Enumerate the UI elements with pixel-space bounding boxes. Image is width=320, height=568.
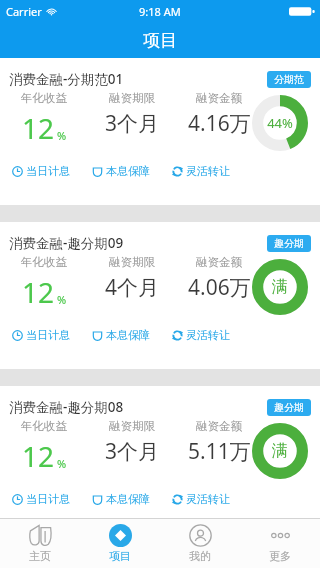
button[interactable]: 消费金融-趣分期09 [0, 222, 320, 369]
staticText: 9:18 AM [139, 4, 181, 19]
staticText: 趣分期 [274, 237, 304, 250]
staticText: % [57, 292, 67, 307]
staticText: 项目 [143, 30, 177, 51]
staticText: 消费金融-趣分期08 [9, 398, 124, 416]
staticText: 当日计息 [26, 164, 70, 178]
button[interactable]: 消费金融-趣分期08 [0, 386, 320, 518]
staticText: 消费金融-趣分期09 [9, 234, 124, 252]
staticText: 3个月 [105, 109, 160, 138]
staticText: 分期范 [274, 73, 304, 86]
staticText: 年化收益 [21, 91, 67, 105]
staticText: 灵活转让 [186, 492, 230, 506]
staticText: 主页 [29, 549, 51, 563]
other: 项目 [109, 524, 132, 547]
staticText: 融资金额 [196, 419, 242, 433]
other: 更多 [269, 524, 292, 547]
staticText: 年化收益 [21, 255, 67, 269]
staticText: 灵活转让 [186, 164, 230, 178]
staticText: 满 [272, 277, 288, 297]
staticText: 4.16万 [188, 109, 251, 138]
button[interactable]: 消费金融-分期范01 [0, 58, 320, 205]
button[interactable]: 主页 [0, 519, 80, 568]
staticText: 当日计息 [26, 328, 70, 342]
staticText: 本息保障 [106, 164, 150, 178]
staticText: 12 [22, 273, 55, 311]
staticText: 满 [272, 441, 288, 461]
button[interactable]: 更多 [240, 519, 320, 568]
staticText: 灵活转让 [186, 328, 230, 342]
staticText: 消费金融-分期范01 [9, 70, 124, 88]
button[interactable]: 项目 [80, 519, 160, 568]
staticText: 融资期限 [109, 419, 155, 433]
staticText: 5.11万 [188, 437, 251, 466]
staticText: 融资金额 [196, 255, 242, 269]
staticText: 趣分期 [274, 401, 304, 414]
staticText: 4个月 [105, 273, 160, 302]
staticText: 融资期限 [109, 91, 155, 105]
other: 我的 [189, 524, 212, 547]
staticText: % [57, 456, 67, 471]
staticText: 4.06万 [188, 273, 251, 302]
staticText: 融资金额 [196, 91, 242, 105]
staticText: 12 [22, 437, 55, 475]
staticText: 年化收益 [21, 419, 67, 433]
staticText: 当日计息 [26, 492, 70, 506]
staticText: 项目 [109, 549, 131, 563]
staticText: Carrier [6, 4, 42, 19]
staticText: 更多 [269, 549, 291, 563]
staticText: 44% [267, 114, 293, 132]
staticText: 融资期限 [109, 255, 155, 269]
staticText: % [57, 128, 67, 143]
staticText: 3个月 [105, 437, 160, 466]
other: 主页 [29, 524, 52, 547]
staticText: 我的 [189, 549, 211, 563]
button[interactable]: 我的 [160, 519, 240, 568]
staticText: 本息保障 [106, 328, 150, 342]
staticText: 12 [22, 109, 55, 147]
staticText: 本息保障 [106, 492, 150, 506]
